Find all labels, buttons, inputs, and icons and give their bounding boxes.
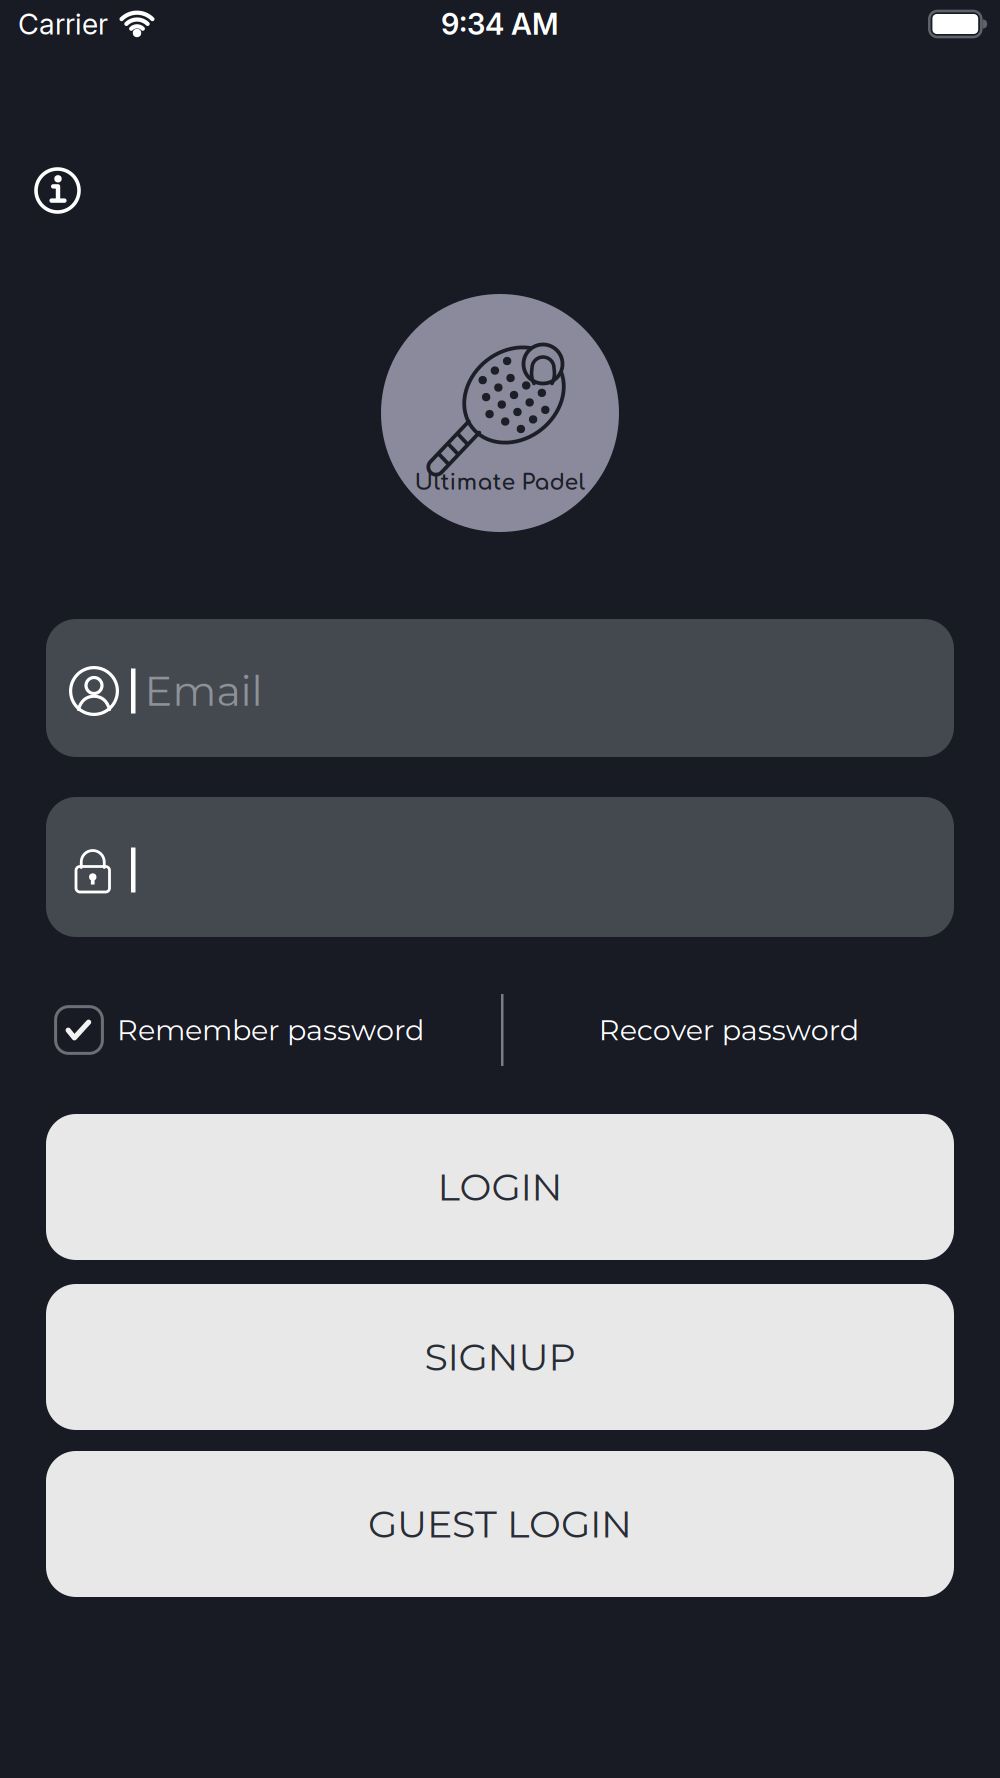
staticText: SIGNUP xyxy=(424,1334,575,1380)
button[interactable]: SIGNUP xyxy=(46,1284,954,1430)
button[interactable]: GUEST LOGIN xyxy=(46,1451,954,1597)
button[interactable]: Password xyxy=(46,797,954,937)
button[interactable]: Recover password xyxy=(599,1012,859,1047)
staticText: Carrier xyxy=(18,7,108,41)
staticText: 9:34 AM xyxy=(441,6,559,42)
staticText: Remember password xyxy=(117,1012,424,1047)
staticText: Email xyxy=(144,666,262,716)
button[interactable]: Remember password xyxy=(46,1005,424,1055)
staticText: GUEST LOGIN xyxy=(368,1501,632,1547)
staticText: Recover password xyxy=(599,1012,859,1047)
button[interactable]: Info xyxy=(34,167,81,214)
staticText: LOGIN xyxy=(437,1164,562,1210)
button[interactable]: Email xyxy=(46,619,954,757)
staticText: Ultimate Padel xyxy=(414,470,585,495)
button[interactable]: LOGIN xyxy=(46,1114,954,1260)
